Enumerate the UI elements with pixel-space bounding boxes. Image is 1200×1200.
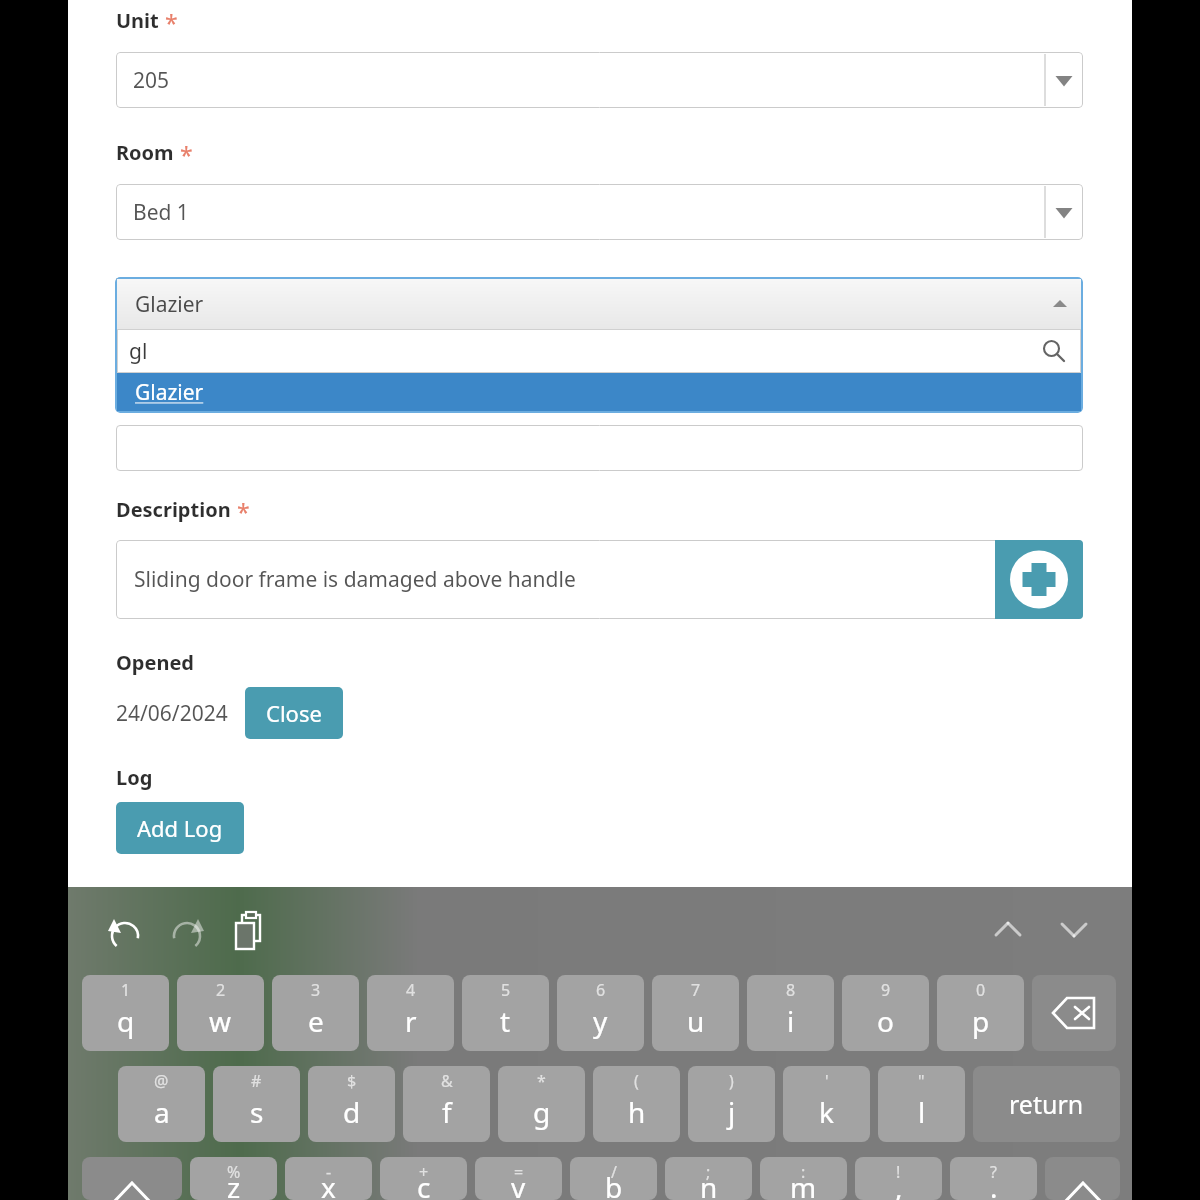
staticText: e <box>308 1002 324 1040</box>
button[interactable]: Next field <box>1054 911 1094 951</box>
staticText: 1 <box>121 979 131 1001</box>
button[interactable]: 3 <box>272 975 359 1051</box>
staticText: gl <box>129 337 148 366</box>
staticText: 8 <box>786 979 796 1001</box>
button[interactable]: 5 <box>462 975 549 1051</box>
button[interactable] <box>116 425 1083 471</box>
button[interactable]: Bed 1 <box>116 184 1083 240</box>
staticText: v <box>511 1168 526 1200</box>
staticText: # <box>251 1070 262 1092</box>
button[interactable]: & <box>403 1066 490 1142</box>
button[interactable]: 2 <box>177 975 264 1051</box>
button[interactable]: Shift <box>1045 1157 1120 1200</box>
staticText: Trade <box>116 271 172 298</box>
button[interactable]: 7 <box>652 975 739 1051</box>
staticText: Bed 1 <box>133 198 189 227</box>
staticText: t <box>500 1002 511 1040</box>
staticText: 7 <box>691 979 701 1001</box>
staticText: 24/06/2024 <box>116 699 228 728</box>
staticText: b <box>605 1168 623 1200</box>
staticText: a <box>154 1093 170 1131</box>
staticText: / <box>611 1161 617 1183</box>
staticText: ) <box>729 1070 734 1092</box>
staticText: return <box>1009 1087 1084 1121</box>
staticText: s <box>250 1093 264 1131</box>
button[interactable]: Backspace <box>1032 975 1116 1051</box>
button[interactable]: ! <box>855 1157 942 1200</box>
staticText: ? <box>990 1161 997 1183</box>
staticText: g <box>533 1093 551 1131</box>
button[interactable]: Glazier <box>117 373 1081 411</box>
button[interactable]: 6 <box>557 975 644 1051</box>
staticText: Add Log <box>137 813 223 843</box>
staticText: 6 <box>596 979 606 1001</box>
button[interactable]: ? <box>950 1157 1037 1200</box>
staticText: o <box>877 1002 894 1040</box>
staticText: - <box>326 1161 332 1183</box>
staticText: ( <box>634 1070 639 1092</box>
button[interactable]: Shift <box>82 1157 182 1200</box>
staticText: 2 <box>216 979 226 1001</box>
button[interactable]: 9 <box>842 975 929 1051</box>
button[interactable]: : <box>760 1157 847 1200</box>
button[interactable]: gl <box>117 329 1081 373</box>
button[interactable]: = <box>475 1157 562 1200</box>
button[interactable]: ( <box>593 1066 680 1142</box>
staticText: 205 <box>133 66 170 95</box>
button[interactable]: Undo <box>104 911 144 951</box>
staticText: f <box>442 1093 452 1131</box>
staticText: 3 <box>311 979 321 1001</box>
staticText: % <box>227 1161 241 1183</box>
staticText: Description <box>116 496 231 523</box>
staticText: " <box>918 1070 925 1092</box>
button[interactable]: # <box>213 1066 300 1142</box>
button[interactable] <box>116 540 1083 619</box>
button[interactable]: 8 <box>747 975 834 1051</box>
button[interactable]: Previous field <box>988 911 1028 951</box>
button[interactable]: 0 <box>937 975 1024 1051</box>
staticText: @ <box>154 1070 169 1092</box>
button[interactable]: ) <box>688 1066 775 1142</box>
staticText: x <box>321 1168 336 1200</box>
button[interactable]: Close <box>245 687 343 739</box>
staticText: 4 <box>406 979 416 1001</box>
button[interactable]: + <box>380 1157 467 1200</box>
staticText: Sliding door frame is damaged above hand… <box>134 565 576 594</box>
staticText: * <box>180 139 193 170</box>
staticText: l <box>918 1093 926 1131</box>
button[interactable]: Glazier <box>117 279 1081 329</box>
button[interactable]: return <box>973 1066 1120 1142</box>
staticText: + <box>419 1161 429 1183</box>
button[interactable]: % <box>190 1157 277 1200</box>
staticText: $ <box>347 1070 357 1092</box>
button[interactable]: - <box>285 1157 372 1200</box>
button[interactable]: 205 <box>116 52 1083 108</box>
button[interactable]: Paste <box>230 911 270 951</box>
button[interactable]: ; <box>665 1157 752 1200</box>
staticText: n <box>700 1168 718 1200</box>
button[interactable]: / <box>570 1157 657 1200</box>
button[interactable]: Add Log <box>116 802 244 854</box>
button[interactable]: " <box>878 1066 965 1142</box>
staticText: p <box>972 1002 990 1040</box>
button[interactable]: $ <box>308 1066 395 1142</box>
staticText: u <box>687 1002 705 1040</box>
staticText: 9 <box>881 979 891 1001</box>
staticText: q <box>117 1002 135 1040</box>
staticText: c <box>417 1168 431 1200</box>
staticText: z <box>227 1168 241 1200</box>
staticText: * <box>165 7 178 38</box>
staticText: h <box>628 1093 646 1131</box>
staticText: Glazier <box>135 290 204 319</box>
staticText: , <box>895 1168 903 1200</box>
button[interactable]: 1 <box>82 975 169 1051</box>
staticText: j <box>728 1093 736 1131</box>
staticText: 5 <box>501 979 511 1001</box>
button[interactable]: Add description <box>995 540 1083 619</box>
button[interactable]: 4 <box>367 975 454 1051</box>
staticText: = <box>514 1161 524 1183</box>
button[interactable]: ' <box>783 1066 870 1142</box>
button[interactable]: Redo <box>168 911 208 951</box>
button[interactable]: * <box>498 1066 585 1142</box>
button[interactable]: @ <box>118 1066 205 1142</box>
